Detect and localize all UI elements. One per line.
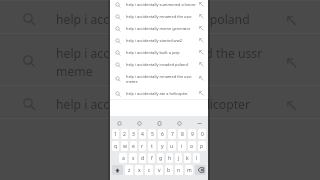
button[interactable]: b: [165, 165, 173, 175]
button[interactable]: 7: [168, 129, 176, 139]
button[interactable]: g: [157, 153, 164, 163]
button[interactable]: 8: [178, 129, 186, 139]
staticText: o: [190, 143, 194, 150]
button[interactable]: d: [139, 153, 146, 163]
button[interactable]: Insert suggestion: [199, 26, 204, 31]
button[interactable]: 3: [130, 129, 137, 139]
staticText: q: [114, 143, 118, 150]
button[interactable]: Insert suggestion: [199, 62, 204, 67]
button[interactable]: z: [125, 165, 133, 175]
button[interactable]: Insert suggestion: [287, 58, 297, 68]
button[interactable]: Insert suggestion: [199, 2, 204, 7]
staticText: 6: [161, 131, 164, 138]
button[interactable]: r: [139, 141, 146, 151]
button[interactable]: Insert suggestion: [199, 50, 204, 55]
button[interactable]: help i accidentally built a jeep: [110, 46, 208, 58]
button[interactable]: 6: [158, 129, 166, 139]
other: Insert suggestion: [199, 14, 204, 19]
button[interactable]: Keyboard tool: [115, 119, 123, 127]
staticText: meme: [56, 63, 93, 80]
button[interactable]: j: [175, 153, 182, 163]
button[interactable]: x: [135, 165, 143, 175]
button[interactable]: 9: [188, 129, 196, 139]
button[interactable]: 2: [121, 129, 128, 139]
button[interactable]: Keyboard tool: [135, 119, 143, 127]
button[interactable]: help i accidentally invaded poland: [0, 1, 320, 34]
button[interactable]: help i accidentally started ww2: [110, 34, 208, 46]
button[interactable]: Shift: [112, 165, 123, 175]
staticText: help i accidentally ate a helicopter: [56, 96, 251, 113]
staticText: u: [170, 143, 174, 150]
button[interactable]: help i accidentally renamed the ussr: [0, 34, 320, 86]
button[interactable]: l: [193, 153, 200, 163]
staticText: a: [122, 155, 125, 162]
button[interactable]: Insert suggestion: [199, 14, 204, 19]
other: Insert suggestion: [199, 76, 204, 81]
other: Insert suggestion: [199, 26, 204, 31]
staticText: v: [158, 167, 161, 174]
button[interactable]: 1: [112, 129, 119, 139]
button[interactable]: p: [198, 141, 206, 151]
button[interactable]: Insert suggestion: [199, 76, 204, 81]
button[interactable]: 0: [198, 129, 206, 139]
staticText: s: [132, 155, 135, 162]
staticText: help i accidentally renamed the ussr: [126, 14, 198, 19]
button[interactable]: a: [119, 153, 127, 163]
staticText: help i accidentally invaded poland: [126, 62, 198, 67]
button[interactable]: Keyboard tool: [175, 119, 183, 127]
button[interactable]: t: [148, 141, 156, 151]
button[interactable]: Insert suggestion: [287, 101, 297, 111]
button[interactable]: e: [130, 141, 137, 151]
staticText: w: [123, 143, 127, 150]
staticText: 5: [151, 131, 154, 138]
button[interactable]: help i accidentally invaded poland: [110, 58, 208, 70]
button[interactable]: Keyboard tool: [155, 119, 163, 127]
button[interactable]: help i accidentally ate a helicopter: [0, 86, 320, 119]
staticText: help i accidentally renamed the ussr: [56, 45, 263, 62]
staticText: 8: [181, 131, 184, 138]
staticText: z: [128, 167, 131, 174]
other: Insert suggestion: [199, 62, 204, 67]
staticText: r: [141, 143, 144, 150]
staticText: b: [167, 167, 171, 174]
other: Insert suggestion: [199, 38, 204, 43]
staticText: help i accidentally meme generator: [126, 26, 198, 31]
button[interactable]: w: [121, 141, 128, 151]
button[interactable]: 4: [139, 129, 146, 139]
button[interactable]: Insert suggestion: [287, 16, 297, 26]
button[interactable]: help i accidentally meme generator: [110, 22, 208, 34]
staticText: j: [178, 155, 180, 162]
other: Insert suggestion: [199, 91, 204, 96]
button[interactable]: Insert suggestion: [199, 91, 204, 96]
button[interactable]: y: [158, 141, 166, 151]
button[interactable]: 5: [148, 129, 156, 139]
staticText: m: [187, 167, 192, 174]
other: Insert suggestion: [287, 101, 297, 111]
button[interactable]: h: [166, 153, 173, 163]
button[interactable]: Keyboard tool: [195, 119, 203, 127]
other: Insert suggestion: [199, 2, 204, 7]
button[interactable]: k: [184, 153, 191, 163]
button[interactable]: i: [178, 141, 186, 151]
staticText: 7: [171, 131, 174, 138]
button[interactable]: c: [145, 165, 153, 175]
staticText: n: [177, 167, 181, 174]
button[interactable]: u: [168, 141, 176, 151]
staticText: 3: [132, 131, 135, 138]
button[interactable]: n: [175, 165, 183, 175]
button[interactable]: v: [155, 165, 163, 175]
button[interactable]: help i accidentally renamed the ussr mem…: [110, 70, 208, 87]
button[interactable]: help i accidentally renamed the ussr: [110, 10, 208, 22]
button[interactable]: help i accidentally ate a helicopter: [110, 87, 208, 99]
staticText: x: [138, 167, 141, 174]
button[interactable]: o: [188, 141, 196, 151]
button[interactable]: help i accidentally summoned a lancer: [110, 0, 208, 10]
button[interactable]: Insert suggestion: [199, 38, 204, 43]
button[interactable]: s: [129, 153, 137, 163]
button[interactable]: Delete: [195, 165, 206, 175]
staticText: 9: [191, 131, 194, 138]
button[interactable]: q: [112, 141, 119, 151]
button[interactable]: f: [148, 153, 155, 163]
staticText: help i accidentally summoned a lancer: [126, 2, 198, 7]
button[interactable]: m: [185, 165, 193, 175]
